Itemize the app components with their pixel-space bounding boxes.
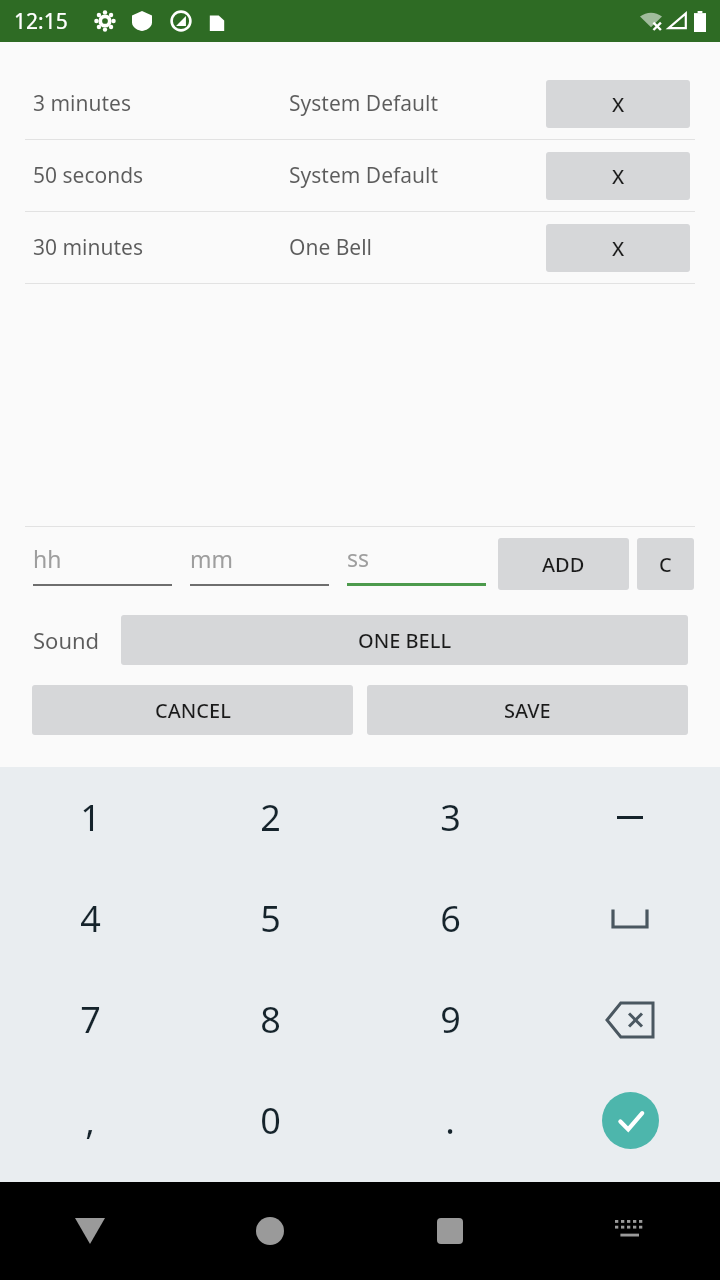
staticText: 9 xyxy=(440,995,461,1044)
button[interactable]: 5 xyxy=(180,868,360,969)
staticText: ss xyxy=(347,542,370,573)
button[interactable]: ss xyxy=(347,542,486,586)
button[interactable]: 50 seconds xyxy=(0,140,720,211)
button[interactable]: C xyxy=(637,538,694,590)
button[interactable]: 8 xyxy=(180,969,360,1070)
staticText: Sound xyxy=(33,625,100,655)
staticText: 2 xyxy=(260,793,281,842)
staticText: 4 xyxy=(80,894,101,943)
button[interactable]: CANCEL xyxy=(32,685,353,735)
button[interactable]: 6 xyxy=(360,868,540,969)
staticText: 50 seconds xyxy=(33,161,289,190)
staticText: 5 xyxy=(260,894,281,943)
button[interactable]: 4 xyxy=(0,868,180,969)
staticText: mm xyxy=(190,543,234,574)
button[interactable]: SAVE xyxy=(367,685,688,735)
button[interactable]: hh xyxy=(33,543,172,586)
button[interactable]: X xyxy=(546,152,690,200)
staticText: 0 xyxy=(260,1096,281,1145)
button[interactable]: ADD xyxy=(498,538,629,590)
button[interactable]: Home xyxy=(180,1182,360,1280)
staticText: X xyxy=(612,91,625,118)
staticText: X xyxy=(612,163,625,190)
staticText: One Bell xyxy=(289,233,546,262)
button[interactable]: Dash xyxy=(540,767,720,868)
staticText: C xyxy=(659,551,672,578)
button[interactable]: 3 xyxy=(360,767,540,868)
button[interactable]: 0 xyxy=(180,1070,360,1171)
staticText: 6 xyxy=(440,894,461,943)
staticText: SAVE xyxy=(504,697,551,724)
button[interactable]: Switch keyboard xyxy=(540,1182,720,1280)
staticText: 30 minutes xyxy=(33,233,289,262)
staticText: System Default xyxy=(289,89,546,118)
staticText: 3 xyxy=(440,793,461,842)
button[interactable]: mm xyxy=(190,543,329,586)
staticText: System Default xyxy=(289,161,546,190)
button[interactable]: 7 xyxy=(0,969,180,1070)
button[interactable]: Backspace xyxy=(540,969,720,1070)
button[interactable]: Done xyxy=(540,1070,720,1171)
button[interactable]: Recents xyxy=(360,1182,540,1280)
staticText: hh xyxy=(33,543,62,574)
button[interactable]: 1 xyxy=(0,767,180,868)
staticText: ONE BELL xyxy=(358,627,452,654)
button[interactable]: Space xyxy=(540,868,720,969)
staticText: , xyxy=(85,1096,95,1145)
button[interactable]: 30 minutes xyxy=(0,212,720,283)
staticText: X xyxy=(612,235,625,262)
staticText: 3 minutes xyxy=(33,89,289,118)
button[interactable]: X xyxy=(546,224,690,272)
button[interactable]: , xyxy=(0,1070,180,1171)
button[interactable]: 9 xyxy=(360,969,540,1070)
staticText: 12:15 xyxy=(14,7,68,36)
button[interactable]: 2 xyxy=(180,767,360,868)
button[interactable]: ONE BELL xyxy=(121,615,688,665)
staticText: 7 xyxy=(80,995,101,1044)
staticText: CANCEL xyxy=(155,697,231,724)
staticText: 8 xyxy=(260,995,281,1044)
button[interactable]: 3 minutes xyxy=(0,68,720,139)
button[interactable]: X xyxy=(546,80,690,128)
button[interactable]: . xyxy=(360,1070,540,1171)
staticText: 1 xyxy=(80,793,101,842)
staticText: . xyxy=(445,1096,455,1145)
button[interactable]: Back xyxy=(0,1182,180,1280)
staticText: ADD xyxy=(542,551,585,578)
